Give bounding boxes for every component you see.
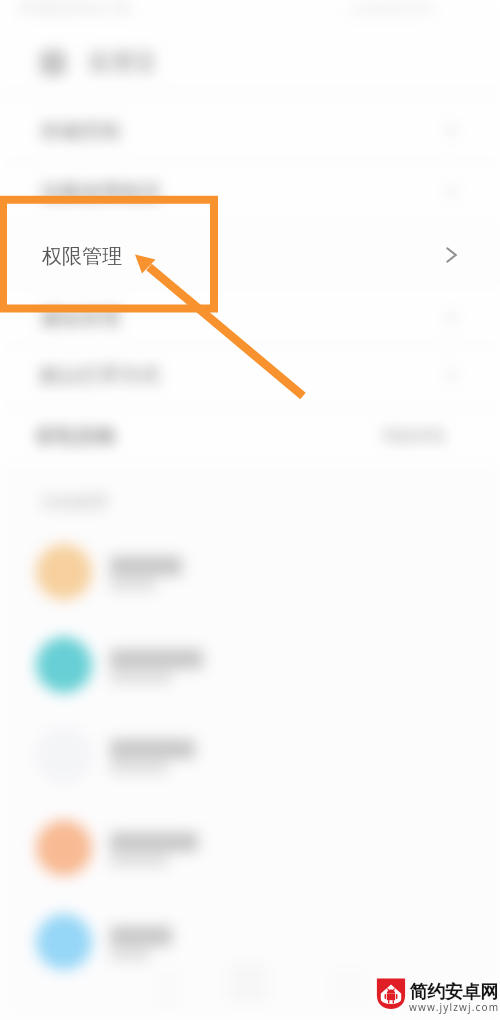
- staticText: 为你推荐: [40, 492, 108, 513]
- button[interactable]: [0, 526, 500, 618]
- button[interactable]: 权限管理: [0, 224, 500, 285]
- other: Open permission management: [446, 247, 457, 263]
- button[interactable]: [0, 619, 500, 711]
- button[interactable]: 权限管理: [0, 223, 500, 285]
- staticText: 简约安卓网: [410, 981, 498, 1004]
- staticText: 默认打开方式: [40, 363, 160, 388]
- button[interactable]: 默认打开方式: [0, 345, 500, 406]
- staticText: 权限管理: [42, 244, 122, 269]
- button[interactable]: [0, 896, 500, 988]
- button[interactable]: 流量使用情况: [0, 161, 500, 223]
- button[interactable]: 通知管理: [0, 285, 500, 345]
- other: Site logo: [376, 978, 406, 1008]
- other: Highlight annotation: [0, 0, 500, 1020]
- staticText: 流量使用情况: [40, 180, 160, 205]
- staticText: 应用宝: [88, 48, 157, 77]
- button[interactable]: [0, 709, 500, 801]
- button[interactable]: 省电策略: [0, 412, 500, 462]
- staticText: www.jylzwj.com: [409, 1000, 500, 1014]
- staticText: 省电策略: [33, 423, 117, 449]
- button[interactable]: 存储空间: [0, 100, 500, 161]
- staticText: 通知管理: [40, 306, 120, 331]
- staticText: 存储空间: [40, 119, 120, 144]
- button[interactable]: [0, 802, 500, 894]
- staticText: 智能省电: [382, 426, 446, 446]
- staticText: 权限管理: [40, 243, 120, 268]
